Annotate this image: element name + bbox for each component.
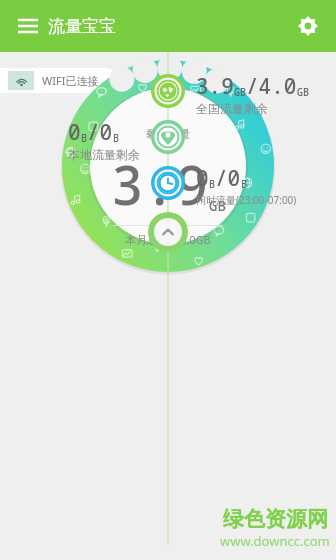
staticText: 本月总流量4.0GB — [125, 232, 211, 247]
staticText: B — [113, 131, 119, 145]
staticText: 0 — [196, 164, 209, 193]
button[interactable]: WIFI已连接 — [0, 68, 118, 93]
button[interactable]: 3.9 — [196, 72, 309, 116]
staticText: 0 — [68, 118, 81, 147]
staticText: 流量宝宝 — [48, 16, 116, 37]
staticText: B — [209, 177, 215, 191]
staticText: 闲时流量(23:00-07:00) — [196, 193, 297, 207]
staticText: B — [81, 131, 87, 145]
staticText: WIFI已连接 — [42, 73, 99, 88]
staticText: /4.0 — [246, 72, 297, 101]
staticText: GB — [234, 85, 246, 99]
button[interactable]: 0 — [196, 164, 297, 207]
staticText: 3.9 — [111, 147, 209, 221]
button[interactable]: Expand — [148, 212, 188, 252]
button[interactable]: Menu — [8, 6, 48, 46]
staticText: GB — [209, 196, 226, 215]
staticText: GB — [297, 85, 309, 99]
staticText: 绿色资源网 — [223, 506, 328, 532]
button[interactable]: Settings — [288, 6, 328, 46]
staticText: 剩余流量 — [146, 127, 190, 141]
staticText: 全国流量剩余 — [196, 101, 268, 116]
staticText: 本地流量剩余 — [68, 147, 140, 162]
staticText: /0 — [215, 164, 241, 193]
staticText: /0 — [87, 118, 113, 147]
button[interactable]: 剩余流量 — [62, 60, 274, 272]
staticText: www.downcc.com — [220, 532, 330, 550]
staticText: 3.9 — [196, 72, 234, 101]
button[interactable]: 0 — [68, 118, 140, 162]
staticText: B — [241, 177, 247, 191]
